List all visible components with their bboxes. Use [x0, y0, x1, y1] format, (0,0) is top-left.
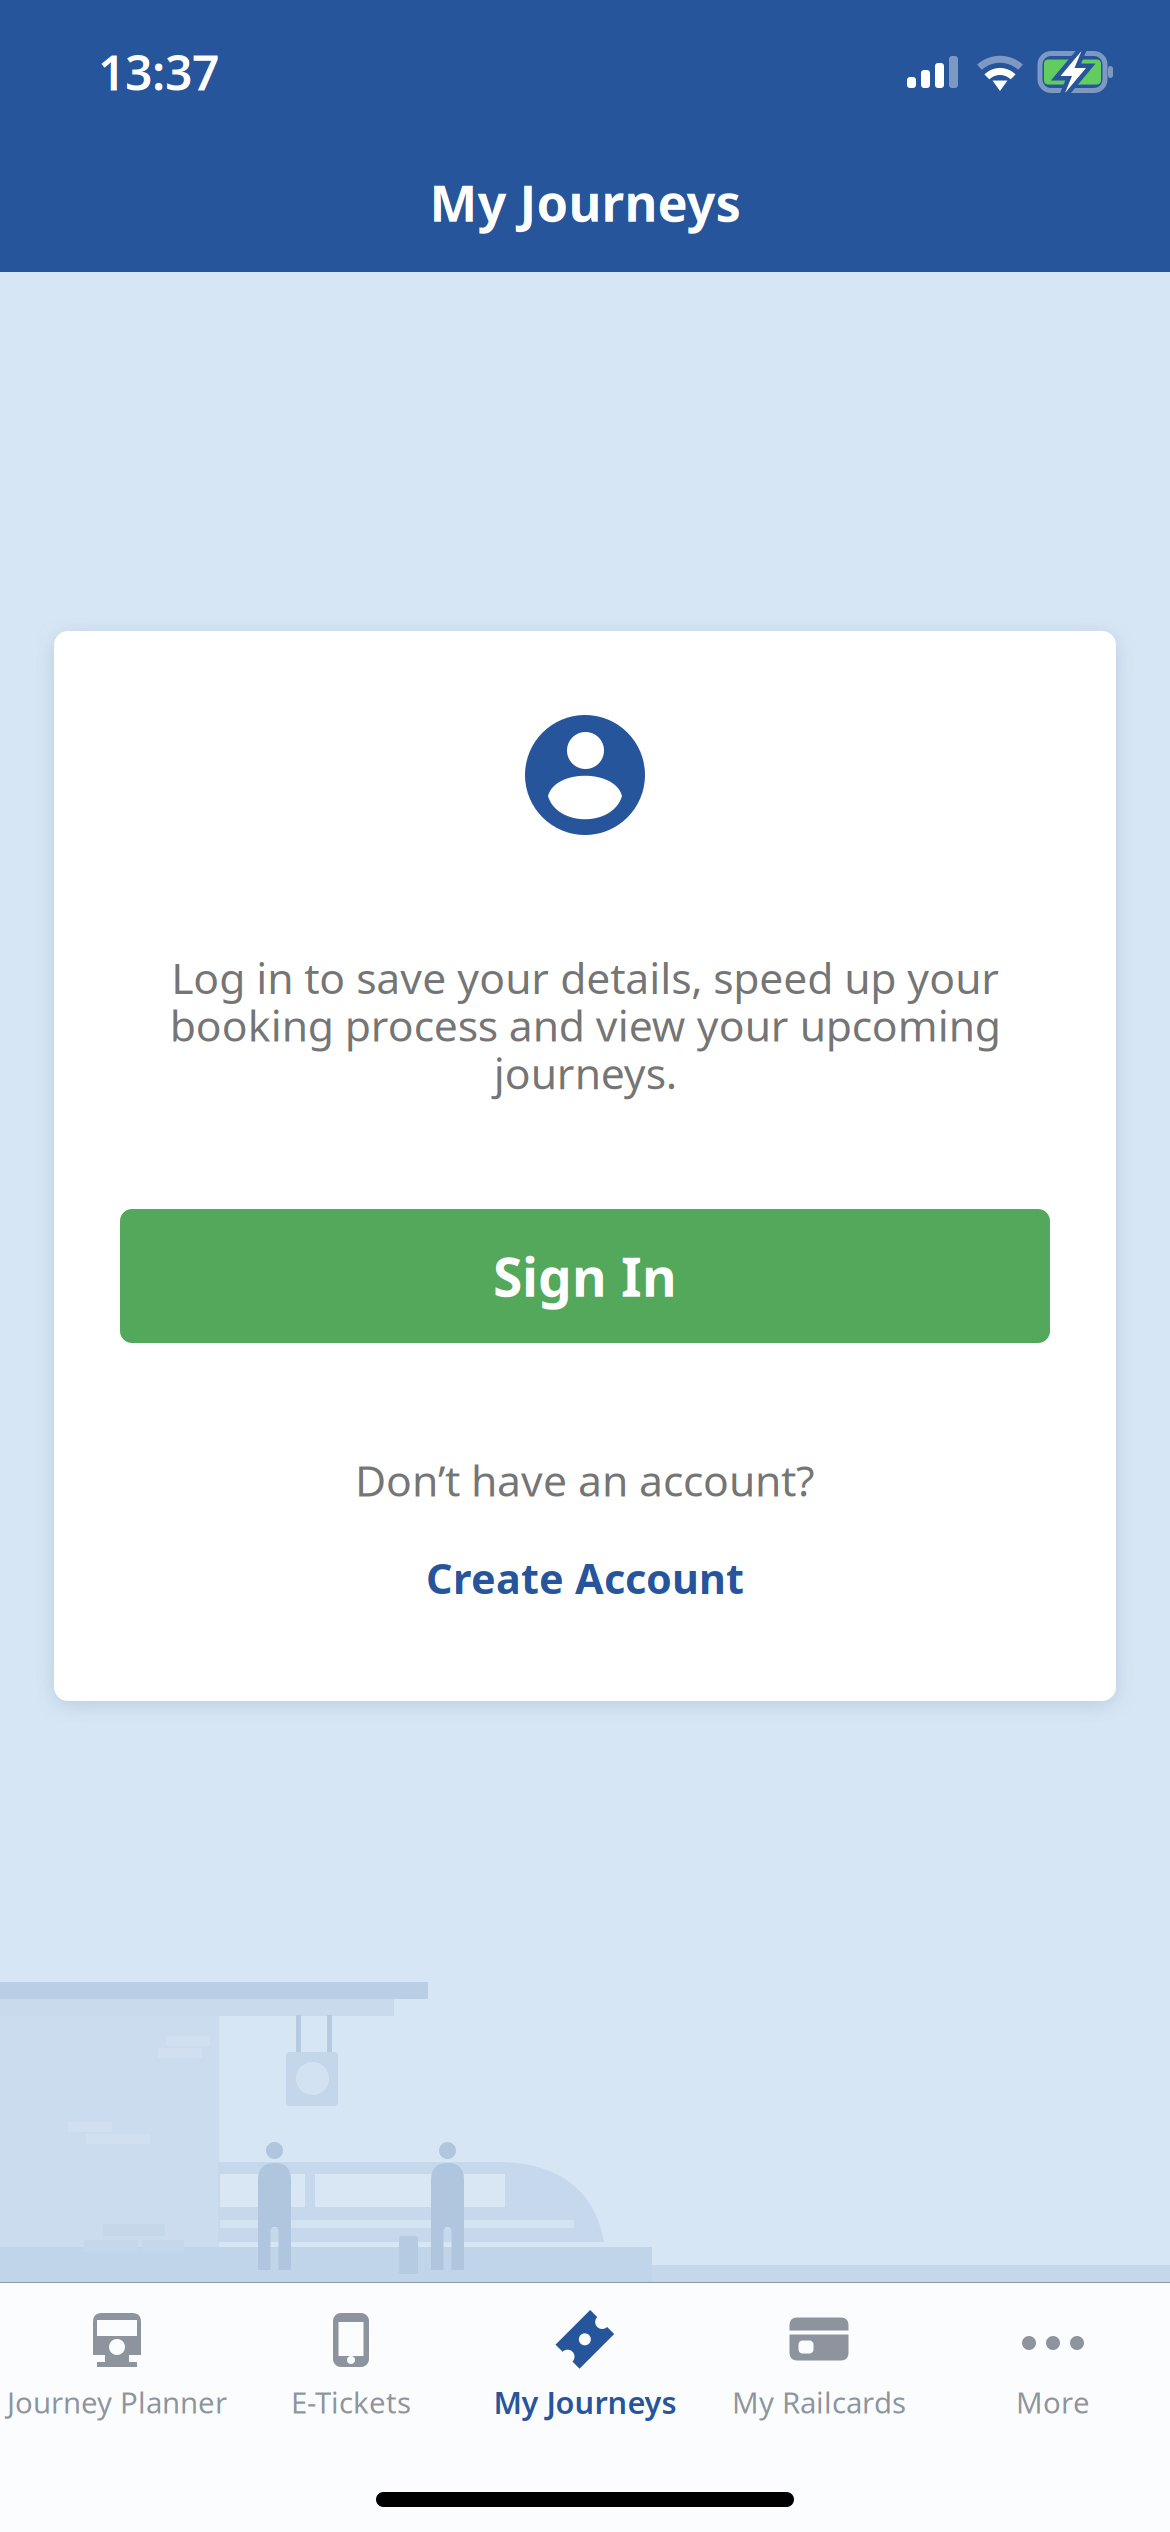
button[interactable]: My Journeys — [468, 2284, 702, 2452]
staticText: Create Account — [426, 1551, 744, 1605]
staticText: More — [1016, 2382, 1090, 2421]
button[interactable]: My Railcards — [702, 2284, 936, 2452]
staticText: E-Tickets — [291, 2382, 411, 2421]
button[interactable]: Journey Planner — [0, 2284, 234, 2452]
button[interactable]: E-Tickets — [234, 2284, 468, 2452]
staticText: Don’t have an account? — [355, 1452, 815, 1508]
button[interactable]: More — [936, 2284, 1170, 2452]
staticText: Log in to save your details, speed up yo… — [169, 949, 1000, 1101]
staticText: My Journeys — [429, 168, 740, 236]
staticText: My Journeys — [493, 2382, 676, 2422]
staticText: Journey Planner — [7, 2382, 227, 2421]
staticText: Sign In — [493, 1241, 677, 1311]
button[interactable]: Create Account — [385, 1548, 785, 1608]
staticText: 13:37 — [98, 40, 219, 104]
staticText: My Railcards — [732, 2382, 906, 2421]
button[interactable]: Sign In — [120, 1209, 1050, 1343]
